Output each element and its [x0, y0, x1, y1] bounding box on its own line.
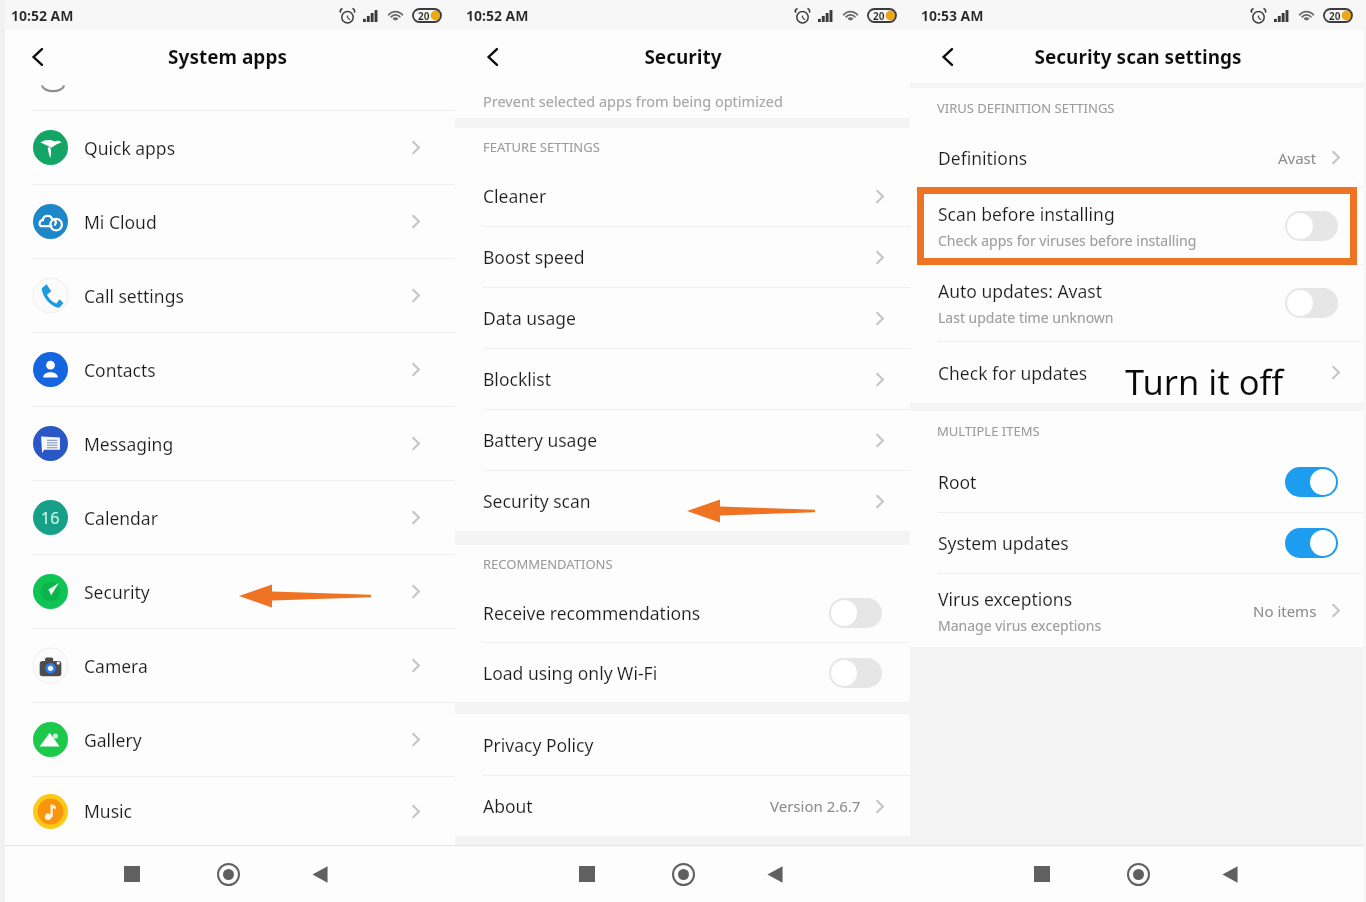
- staticText: System updates: [938, 531, 1069, 555]
- staticText: Auto updates: Avast: [938, 279, 1103, 303]
- staticText: Blocklist: [483, 367, 551, 391]
- button[interactable]: 16: [0, 481, 455, 554]
- button[interactable]: Off: [829, 598, 882, 628]
- staticText: 20: [418, 9, 430, 23]
- staticText: Privacy Policy: [483, 733, 594, 757]
- staticText: Contacts: [84, 358, 156, 382]
- staticText: Root: [938, 470, 977, 494]
- button[interactable]: Call settings: [0, 259, 455, 332]
- staticText: Data usage: [483, 306, 576, 330]
- staticText: System apps: [168, 44, 287, 70]
- button[interactable]: Check for updates: [910, 342, 1366, 403]
- staticText: Music: [84, 799, 132, 823]
- button[interactable]: On: [1285, 528, 1338, 558]
- staticText: Security scan: [483, 489, 591, 513]
- button[interactable]: Auto updates: Avast: [910, 265, 1366, 341]
- staticText: FEATURE SETTINGS: [483, 138, 600, 156]
- button[interactable]: Load using only Wi-Fi: [455, 643, 910, 702]
- button[interactable]: Home: [660, 851, 706, 897]
- button[interactable]: Off: [1285, 211, 1338, 241]
- button[interactable]: Mi Cloud: [0, 185, 455, 258]
- staticText: Prevent selected apps from being optimiz…: [483, 91, 910, 111]
- button[interactable]: Privacy Policy: [455, 714, 910, 775]
- button[interactable]: Back: [1211, 851, 1257, 897]
- staticText: Receive recommendations: [483, 601, 701, 625]
- staticText: VIRUS DEFINITION SETTINGS: [937, 99, 1115, 117]
- button[interactable]: Home: [205, 851, 251, 897]
- staticText: RECOMMENDATIONS: [483, 555, 613, 573]
- button[interactable]: Recents: [564, 851, 610, 897]
- staticText: Calendar: [84, 506, 158, 530]
- button[interactable]: Recents: [109, 851, 155, 897]
- button[interactable]: Home: [1115, 851, 1161, 897]
- button[interactable]: Back: [930, 39, 966, 75]
- button[interactable]: Scan before installing: [910, 188, 1366, 264]
- button[interactable]: Root: [910, 451, 1366, 512]
- staticText: Scan before installing: [938, 202, 1115, 226]
- staticText: 10:52 AM: [466, 6, 529, 25]
- staticText: Gallery: [84, 728, 142, 752]
- staticText: Security: [84, 580, 150, 604]
- staticText: Camera: [84, 654, 148, 678]
- button[interactable]: Gallery: [0, 703, 455, 776]
- staticText: 10:52 AM: [11, 6, 74, 25]
- button[interactable]: Off: [1285, 288, 1338, 318]
- staticText: 20: [873, 9, 885, 23]
- staticText: Quick apps: [84, 136, 176, 160]
- button[interactable]: Back: [301, 851, 347, 897]
- staticText: Call settings: [84, 284, 184, 308]
- staticText: Manage virus exceptions: [938, 616, 1102, 635]
- button[interactable]: Definitions: [910, 128, 1366, 187]
- button[interactable]: Blocklist: [455, 349, 910, 409]
- staticText: Cleaner: [483, 184, 547, 208]
- button[interactable]: Security scan: [455, 471, 910, 531]
- staticText: No items: [1253, 601, 1317, 621]
- staticText: Load using only Wi-Fi: [483, 661, 658, 685]
- button[interactable]: Back: [756, 851, 802, 897]
- staticText: Mi Cloud: [84, 210, 157, 234]
- button[interactable]: Camera: [0, 629, 455, 702]
- staticText: Turn it off: [1125, 358, 1284, 405]
- staticText: MULTIPLE ITEMS: [937, 422, 1040, 440]
- staticText: Definitions: [938, 146, 1028, 170]
- staticText: Virus exceptions: [938, 587, 1073, 611]
- staticText: Avast: [1278, 148, 1317, 168]
- staticText: Version 2.6.7: [770, 796, 861, 816]
- staticText: About: [483, 794, 533, 818]
- staticText: Security: [644, 44, 722, 70]
- staticText: 20: [1329, 9, 1341, 23]
- staticText: Boost speed: [483, 245, 585, 269]
- staticText: Check apps for viruses before installing: [938, 231, 1197, 250]
- button[interactable]: Cleaner: [455, 166, 910, 226]
- button[interactable]: Data usage: [455, 288, 910, 348]
- staticText: Last update time unknown: [938, 308, 1114, 327]
- button[interactable]: System updates: [910, 513, 1366, 573]
- button[interactable]: Security: [0, 555, 455, 628]
- staticText: Check for updates: [938, 361, 1088, 385]
- button[interactable]: Back: [20, 39, 56, 75]
- button[interactable]: Virus exceptions: [910, 574, 1366, 647]
- staticText: Security scan settings: [1034, 44, 1242, 70]
- button[interactable]: Music: [0, 777, 455, 845]
- staticText: Battery usage: [483, 428, 598, 452]
- staticText: Messaging: [84, 432, 174, 456]
- button[interactable]: Messaging: [0, 407, 455, 480]
- button[interactable]: Recents: [1019, 851, 1065, 897]
- button[interactable]: Back: [475, 39, 511, 75]
- button[interactable]: Quick apps: [0, 111, 455, 184]
- button[interactable]: About: [455, 776, 910, 836]
- button[interactable]: Battery usage: [455, 410, 910, 470]
- button[interactable]: Contacts: [0, 333, 455, 406]
- button[interactable]: Off: [829, 658, 882, 688]
- button[interactable]: On: [1285, 467, 1338, 497]
- button[interactable]: Boost speed: [455, 227, 910, 287]
- button[interactable]: Receive recommendations: [455, 583, 910, 642]
- staticText: 16: [41, 507, 60, 529]
- staticText: 10:53 AM: [921, 6, 984, 25]
